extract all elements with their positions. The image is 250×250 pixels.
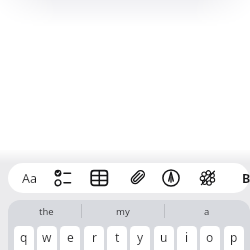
staticText: i [185, 229, 189, 245]
button[interactable] [161, 166, 181, 190]
staticText: u [160, 229, 168, 245]
staticText: t [115, 229, 120, 245]
button[interactable]: t [107, 226, 127, 250]
button[interactable]: i [177, 226, 197, 250]
staticText: my [116, 205, 130, 218]
button[interactable] [90, 166, 110, 190]
staticText: p [230, 229, 238, 245]
button[interactable] [126, 166, 148, 190]
button[interactable]: u [154, 226, 174, 250]
button[interactable]: o [200, 226, 220, 250]
button[interactable]: a [168, 201, 246, 222]
staticText: a [204, 205, 210, 218]
button[interactable]: r [84, 226, 104, 250]
button[interactable] [197, 166, 219, 190]
staticText: w [42, 229, 52, 245]
staticText: r [92, 229, 97, 245]
staticText: the [39, 205, 54, 218]
button[interactable] [51, 166, 75, 190]
button[interactable]: q [14, 226, 34, 250]
button[interactable]: w [37, 226, 57, 250]
staticText: e [67, 229, 74, 245]
button[interactable]: y [130, 226, 150, 250]
staticText: B [242, 170, 250, 187]
button[interactable]: p [224, 226, 244, 250]
staticText: y [137, 229, 144, 245]
button[interactable] [236, 166, 250, 190]
button[interactable] [14, 166, 46, 190]
button[interactable]: the [12, 201, 80, 222]
staticText: o [206, 229, 214, 245]
button[interactable]: my [84, 201, 162, 222]
button[interactable]: e [60, 226, 80, 250]
staticText: q [20, 229, 28, 245]
staticText: Aa [22, 170, 38, 187]
